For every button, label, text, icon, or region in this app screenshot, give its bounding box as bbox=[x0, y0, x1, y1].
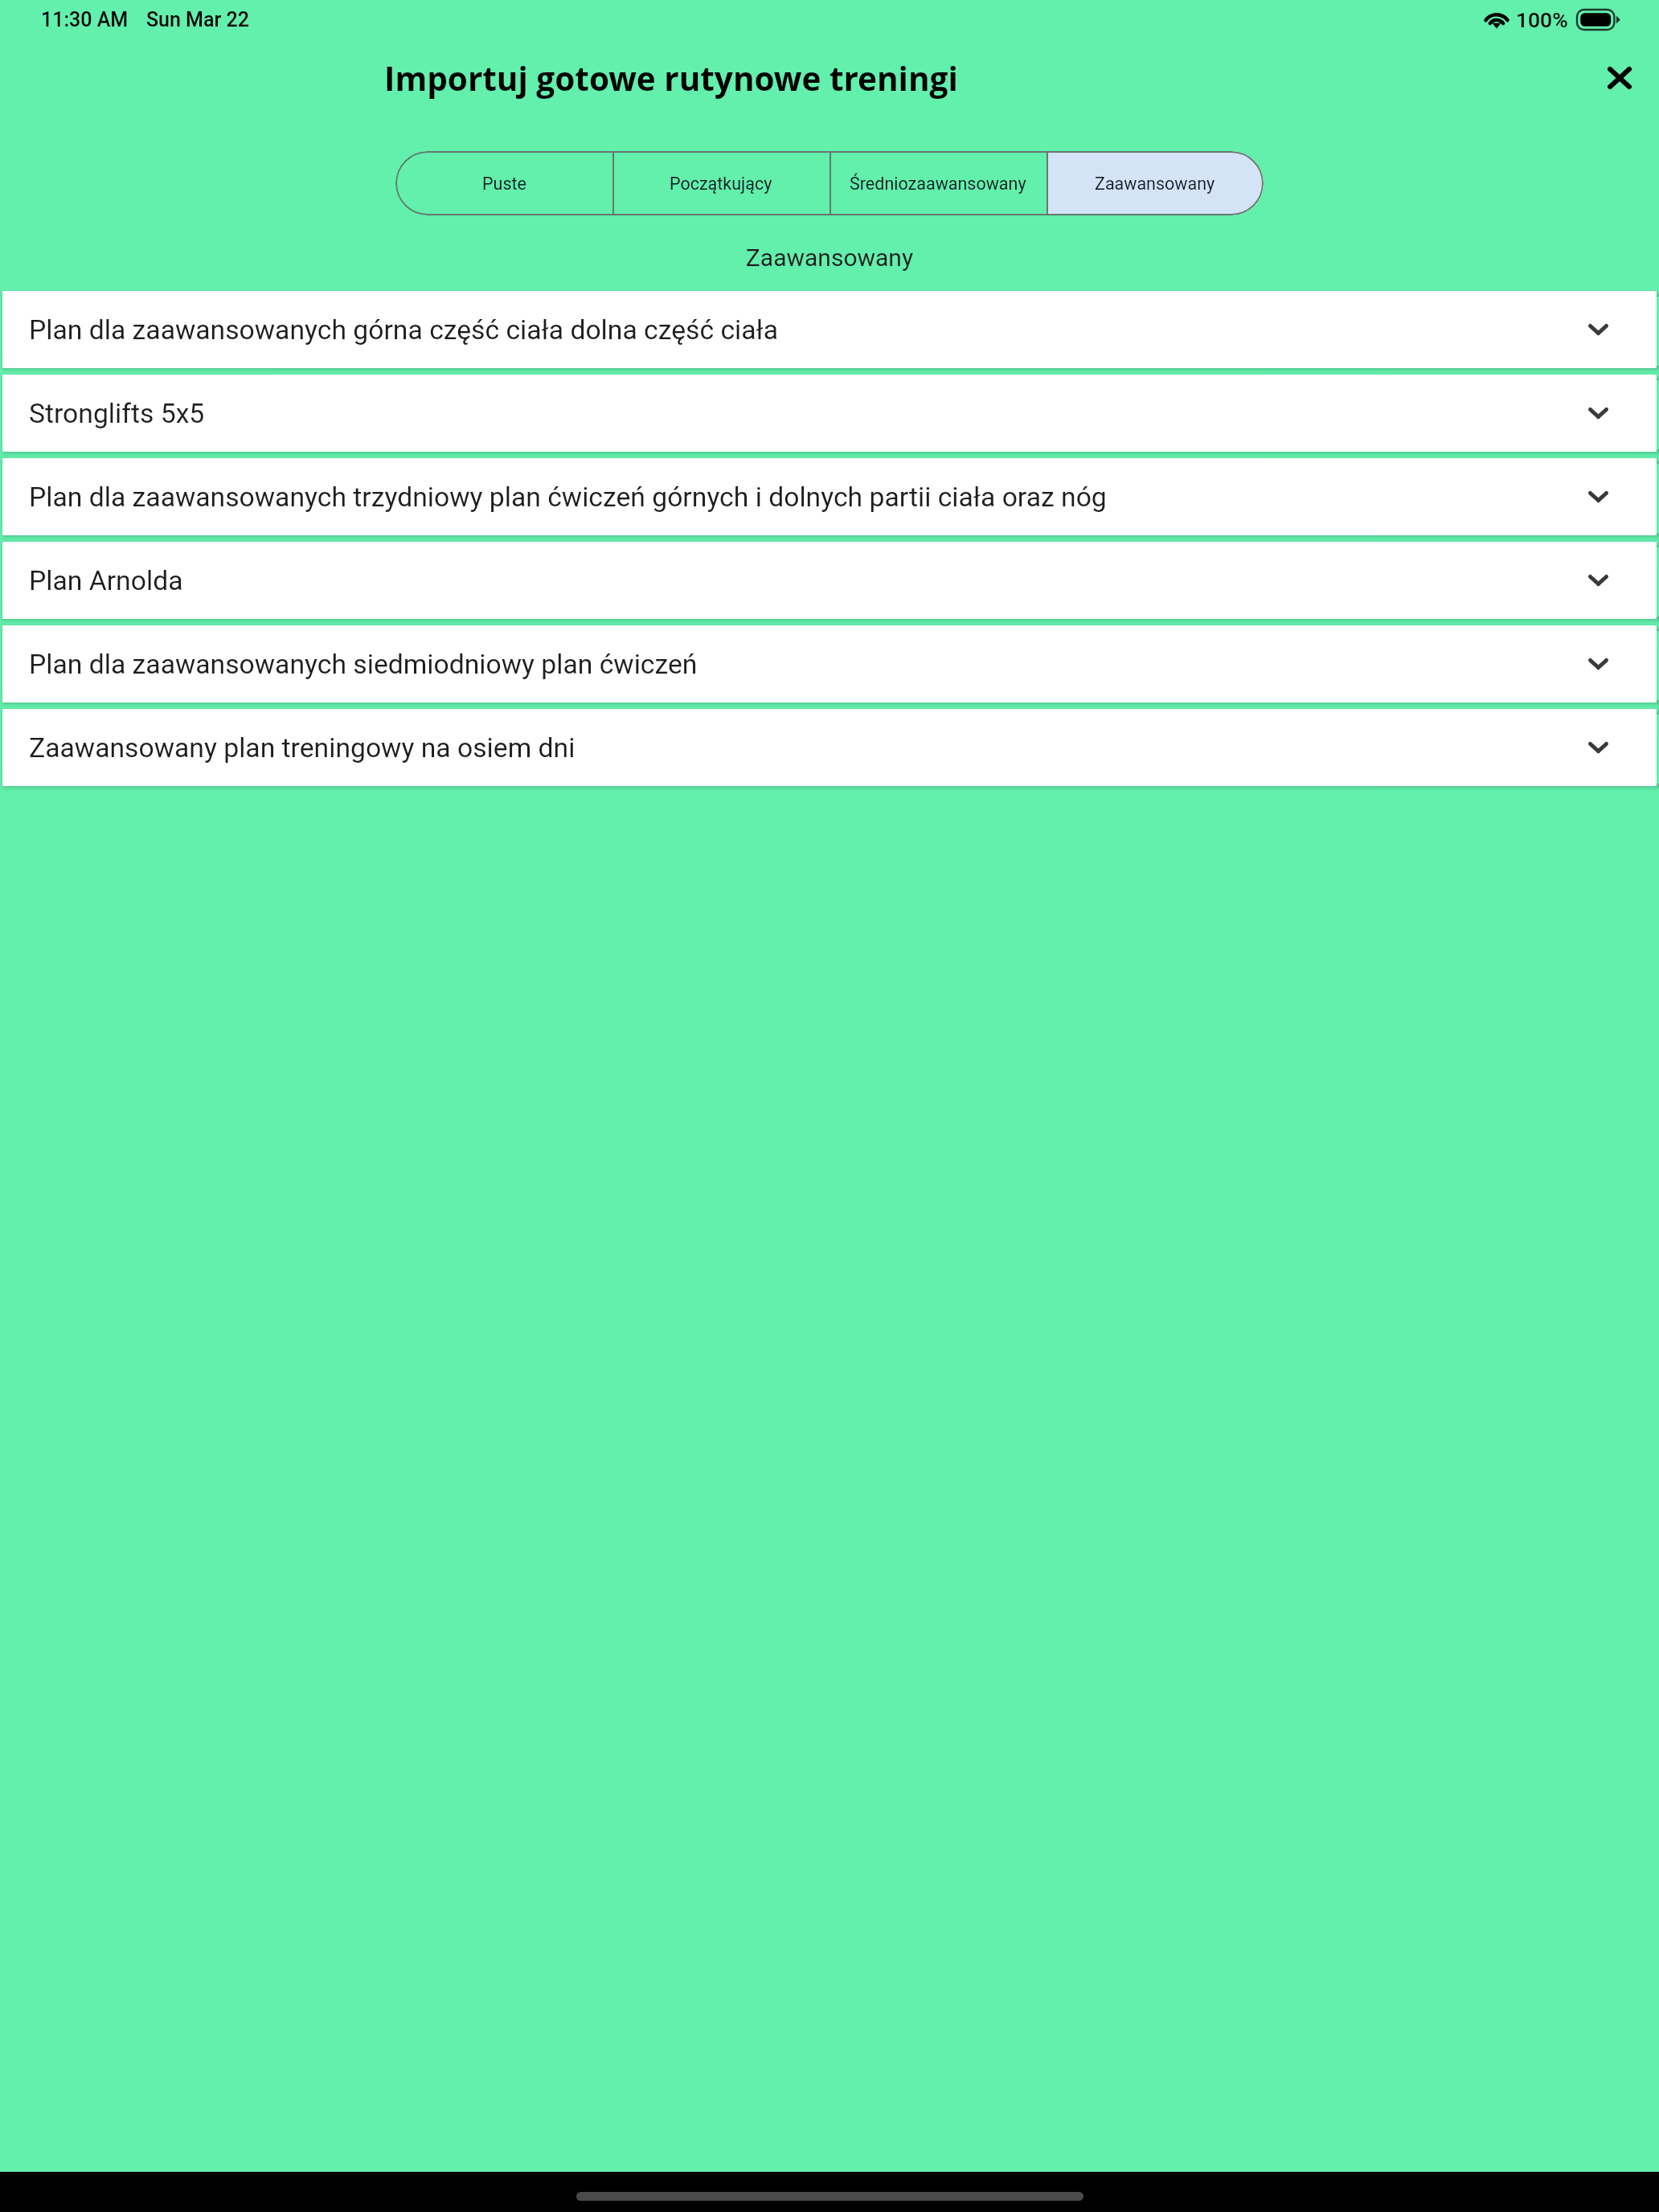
button[interactable]: Początkujący bbox=[612, 151, 829, 215]
staticText: Importuj gotowe rutynowe treningi bbox=[384, 56, 958, 100]
staticText: Stronglifts 5x5 bbox=[29, 398, 205, 429]
button[interactable]: Średniozaawansowany bbox=[829, 151, 1047, 215]
other: Expand bbox=[1582, 313, 1614, 346]
other: Expand bbox=[1582, 481, 1614, 513]
staticText: Puste bbox=[482, 174, 526, 194]
staticText: 11:30 AM bbox=[41, 8, 129, 31]
staticText: Plan dla zaawansowanych trzydniowy plan … bbox=[29, 481, 1107, 513]
button[interactable]: Plan Arnolda bbox=[2, 542, 1657, 619]
staticText: Plan dla zaawansowanych górna część ciał… bbox=[29, 314, 778, 346]
staticText: Sun Mar 22 bbox=[146, 8, 249, 31]
staticText: Zaawansowany bbox=[1095, 174, 1215, 194]
staticText: Średniozaawansowany bbox=[850, 174, 1026, 194]
button[interactable]: Puste bbox=[395, 151, 612, 215]
button[interactable]: Plan dla zaawansowanych górna część ciał… bbox=[2, 291, 1657, 368]
other: Expand bbox=[1582, 564, 1614, 596]
button[interactable]: Zaawansowany bbox=[1047, 151, 1264, 215]
other: Expand bbox=[1582, 731, 1614, 764]
staticText: Plan Arnolda bbox=[29, 565, 183, 596]
staticText: Początkujący bbox=[670, 174, 772, 194]
button[interactable]: Zaawansowany plan treningowy na osiem dn… bbox=[2, 709, 1657, 786]
button[interactable]: Close bbox=[1596, 54, 1644, 102]
staticText: Zaawansowany bbox=[0, 244, 1659, 272]
button[interactable]: Plan dla zaawansowanych trzydniowy plan … bbox=[2, 458, 1657, 535]
other: Expand bbox=[1582, 397, 1614, 429]
button[interactable]: Stronglifts 5x5 bbox=[2, 375, 1657, 452]
staticText: Zaawansowany plan treningowy na osiem dn… bbox=[29, 732, 576, 764]
staticText: 100% bbox=[1516, 7, 1568, 32]
other: Expand bbox=[1582, 648, 1614, 680]
button[interactable]: Plan dla zaawansowanych siedmiodniowy pl… bbox=[2, 625, 1657, 703]
staticText: Plan dla zaawansowanych siedmiodniowy pl… bbox=[29, 649, 698, 680]
